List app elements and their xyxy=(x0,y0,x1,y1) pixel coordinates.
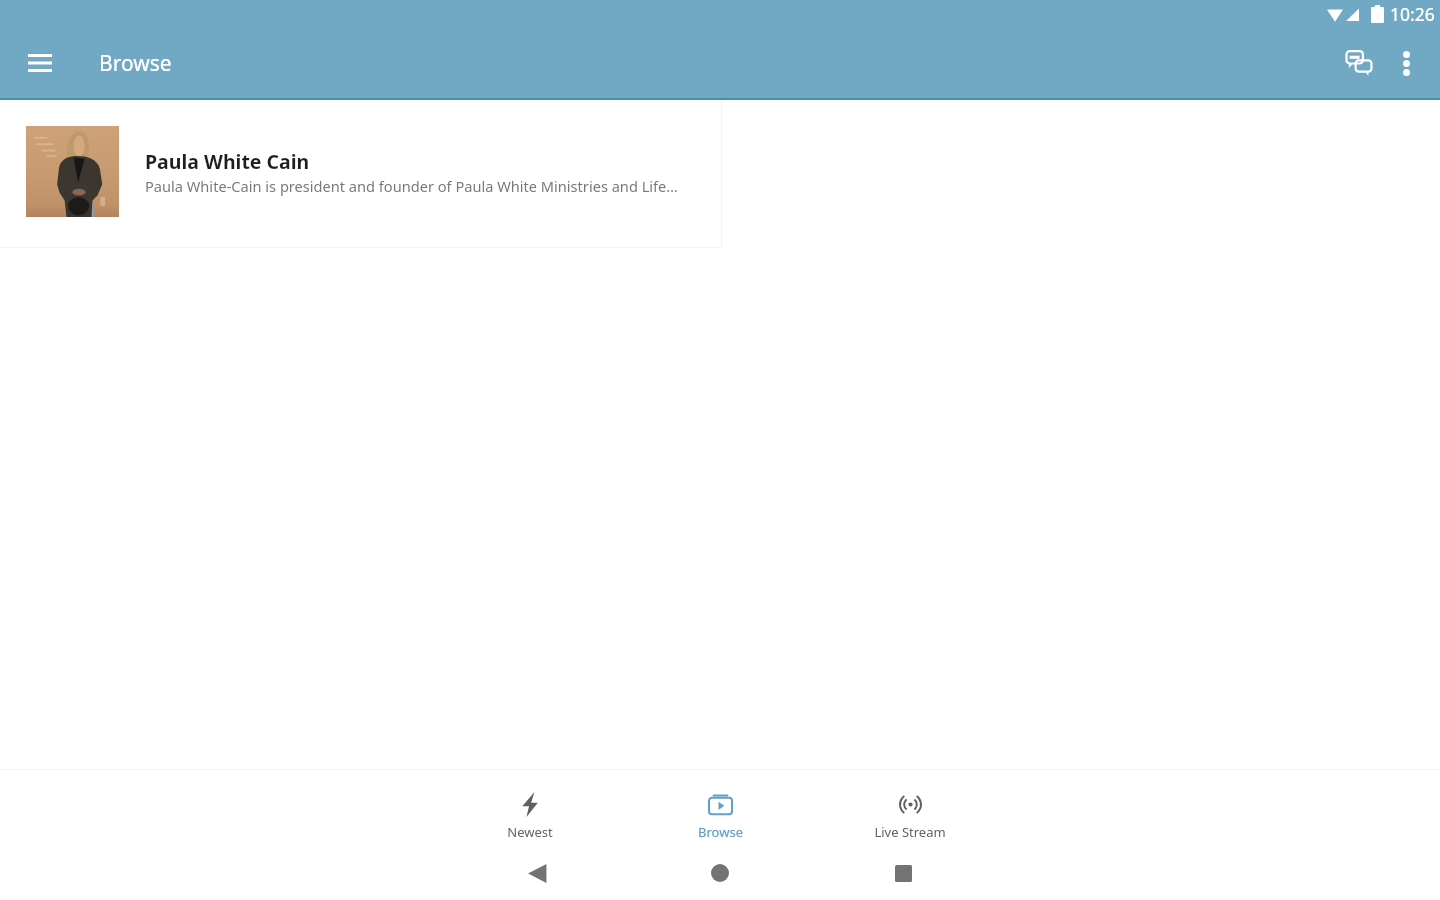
button[interactable]: Live Stream xyxy=(855,769,965,852)
button[interactable]: Back xyxy=(513,849,561,897)
staticText: 10:26 xyxy=(1390,2,1435,26)
staticText: Paula White-Cain is president and founde… xyxy=(145,176,678,196)
staticText: Newest xyxy=(507,823,553,841)
button[interactable]: Paula White Cain xyxy=(0,100,721,247)
button[interactable]: Recent apps xyxy=(879,849,927,897)
button[interactable]: Open navigation drawer xyxy=(16,39,64,87)
button[interactable]: Home xyxy=(696,849,744,897)
staticText: Browse xyxy=(698,823,743,841)
staticText: Paula White Cain xyxy=(145,148,310,175)
staticText: Live Stream xyxy=(874,823,946,841)
button[interactable]: Chat xyxy=(1333,37,1385,89)
button[interactable]: More options xyxy=(1382,39,1430,87)
button[interactable]: Newest xyxy=(475,769,585,852)
staticText: Browse xyxy=(99,49,172,78)
button[interactable]: Browse xyxy=(665,769,775,852)
